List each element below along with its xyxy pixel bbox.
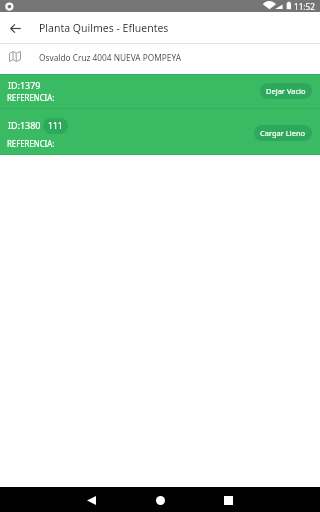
staticText: 111 [48, 120, 63, 132]
button[interactable]: Home [151, 491, 169, 509]
button[interactable]: Recents [219, 491, 237, 509]
button[interactable]: Dejar Vacio [260, 83, 312, 99]
staticText: REFERENCIA: [7, 92, 55, 103]
staticText: ID:1380 [8, 119, 40, 132]
button[interactable]: ID:1380 [0, 109, 320, 154]
button[interactable]: ID:1379 [0, 75, 320, 108]
button[interactable]: Back [0, 13, 30, 44]
staticText: Planta Quilmes - Efluentes [39, 21, 169, 35]
staticText: 11:52 [294, 1, 315, 12]
button[interactable]: Osvaldo Cruz 4004 NUEVA POMPEYA [0, 44, 320, 74]
button[interactable]: Back [82, 491, 100, 509]
staticText: REFERENCIA: [7, 138, 55, 149]
button[interactable]: Cargar Lleno [254, 125, 312, 141]
staticText: ID:1379 [8, 79, 40, 92]
staticText: Dejar Vacio [266, 86, 306, 96]
staticText: Cargar Lleno [260, 128, 306, 138]
staticText: Osvaldo Cruz 4004 NUEVA POMPEYA [39, 52, 181, 63]
